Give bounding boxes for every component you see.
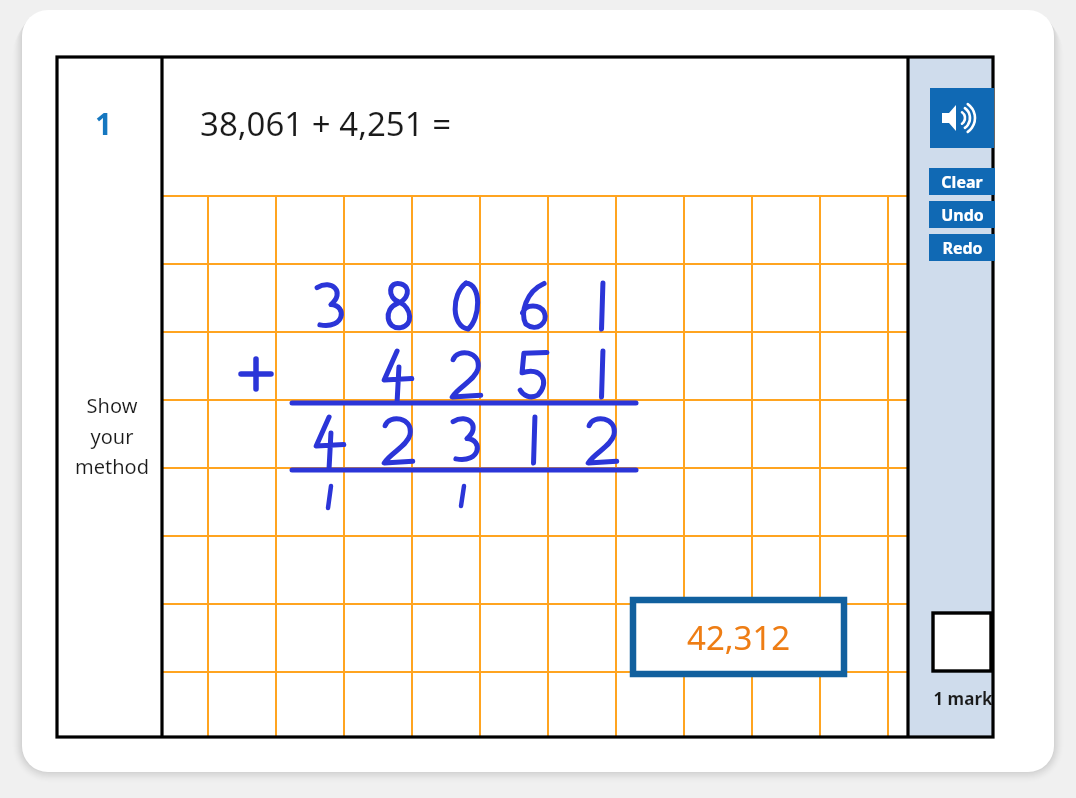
staticText: 38,061 + 4,251 =	[200, 101, 452, 146]
button[interactable]: Redo	[929, 234, 995, 261]
staticText: Redo	[942, 237, 983, 259]
button[interactable]: Undo	[929, 201, 995, 228]
button[interactable]: Play audio	[930, 88, 994, 148]
staticText: 1	[95, 103, 113, 144]
staticText: 42,312	[687, 615, 791, 660]
staticText: Show your method	[75, 392, 149, 479]
staticText: Undo	[941, 204, 984, 226]
button[interactable]: Clear	[929, 168, 995, 195]
staticText: 1 mark	[933, 687, 993, 710]
staticText: Clear	[941, 171, 983, 193]
button[interactable]: 42,312	[633, 600, 844, 674]
